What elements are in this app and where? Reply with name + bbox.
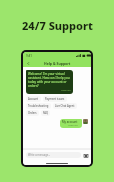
staticText: Troubleshooting	[28, 104, 49, 108]
button[interactable]: Troubleshooting	[28, 104, 49, 108]
staticText: 9:41	[26, 54, 32, 58]
button[interactable]: Live Chat Agent	[55, 104, 75, 108]
staticText: Payment issues	[45, 97, 65, 101]
button[interactable]: Send	[83, 153, 88, 158]
button[interactable]: Orders	[28, 111, 37, 115]
staticText: My account	[62, 120, 78, 124]
staticText: Orders	[28, 111, 37, 115]
button[interactable]: Back	[25, 60, 31, 66]
staticText: 10:02 AM	[61, 89, 71, 92]
button[interactable]: Account	[28, 97, 39, 101]
staticText: Help & Support	[44, 61, 71, 66]
staticText: Welcome! I'm your virtual assistant. How…	[28, 72, 71, 88]
staticText: Account	[28, 97, 39, 101]
staticText: FAQ	[43, 111, 48, 115]
staticText: Write a message...	[28, 153, 51, 157]
staticText: 10:03 AM	[68, 124, 78, 127]
button[interactable]: Payment issues	[45, 97, 65, 101]
staticText: Live Chat Agent	[55, 104, 75, 108]
button[interactable]: FAQ	[43, 111, 48, 115]
staticText: 24/7 Support	[22, 18, 93, 33]
button[interactable]: Write a message...	[28, 152, 79, 158]
